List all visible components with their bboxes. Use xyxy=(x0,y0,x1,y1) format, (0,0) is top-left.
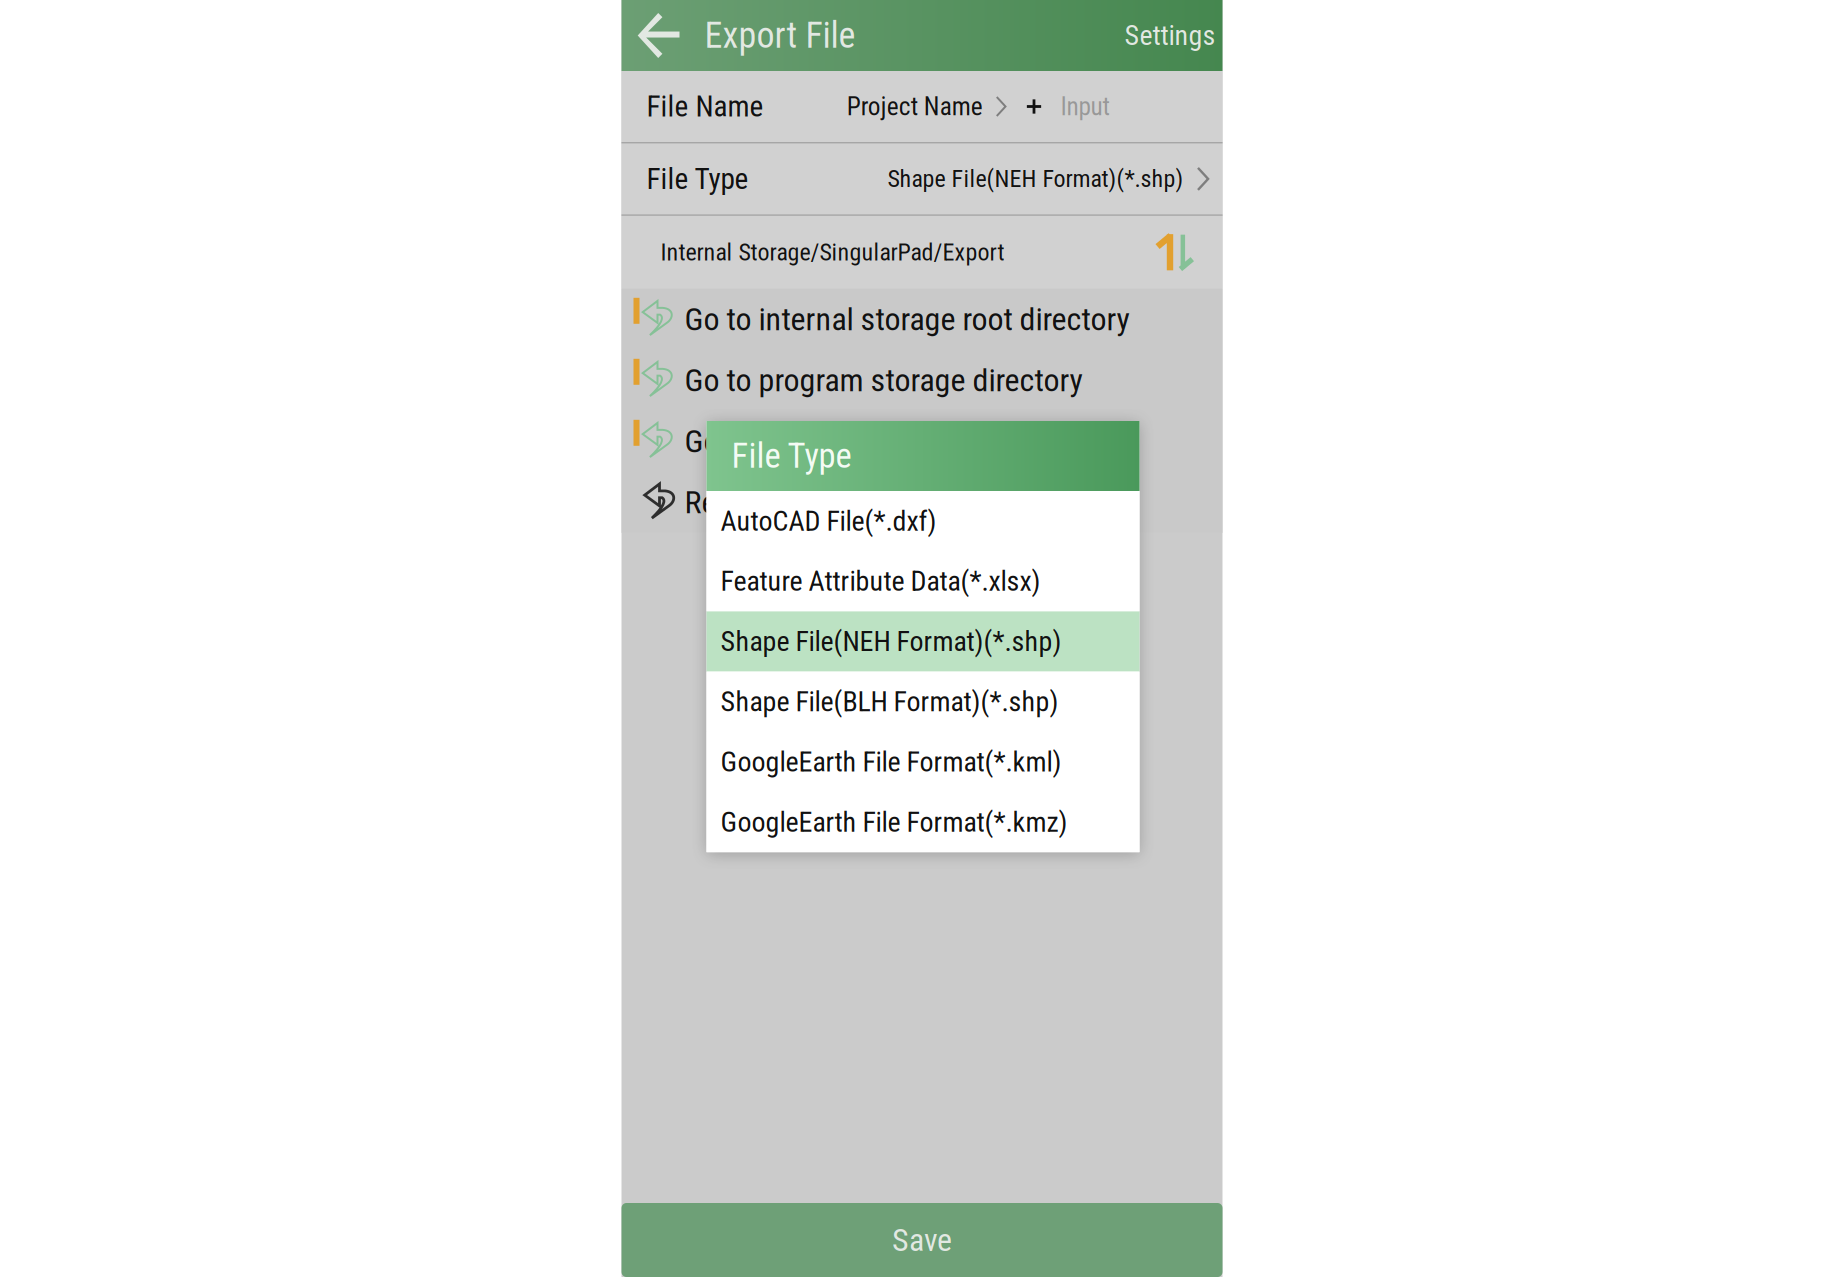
staticText: Export File xyxy=(704,14,855,57)
staticText: Save xyxy=(892,1221,952,1259)
button[interactable]: GoogleEarth File Format(*.kml) xyxy=(706,732,1139,792)
staticText: Feature Attribute Data(*.xlsx) xyxy=(720,565,1040,598)
button[interactable]: Return to the previous directory xyxy=(621,472,1222,533)
button[interactable]: Go to SD card storage directory xyxy=(621,411,1222,472)
button[interactable]: GoogleEarth File Format(*.kmz) xyxy=(706,792,1139,852)
button[interactable]: File Name xyxy=(621,71,1222,142)
staticText: Shape File(NEH Format)(*.shp) xyxy=(720,625,1061,658)
staticText: File Type xyxy=(646,162,748,196)
staticText: Shape File(BLH Format)(*.shp) xyxy=(720,685,1058,718)
staticText: Input xyxy=(1060,92,1109,121)
button[interactable]: File Type xyxy=(621,143,1222,214)
staticText: Shape File(NEH Format)(*.shp) xyxy=(888,165,1184,193)
button[interactable]: Shape File(BLH Format)(*.shp) xyxy=(706,672,1139,732)
staticText: Go to SD card storage directory xyxy=(684,423,1074,460)
staticText: File Name xyxy=(646,89,763,124)
staticText: Return to the previous directory xyxy=(684,484,1075,521)
button[interactable]: Settings xyxy=(1124,0,1222,71)
staticText: AutoCAD File(*.dxf) xyxy=(720,505,936,537)
staticText: Go to program storage directory xyxy=(684,362,1082,399)
staticText: Settings xyxy=(1124,19,1215,52)
button[interactable]: Back xyxy=(621,0,697,71)
staticText: Internal Storage/SingularPad/Export xyxy=(660,238,1004,266)
button[interactable]: Toggle sort order xyxy=(1156,232,1196,272)
staticText: Project Name xyxy=(847,92,983,121)
button[interactable]: Feature Attribute Data(*.xlsx) xyxy=(706,551,1139,611)
staticText: GoogleEarth File Format(*.kmz) xyxy=(720,806,1067,838)
staticText: GoogleEarth File Format(*.kml) xyxy=(720,745,1061,778)
staticText: File Type xyxy=(731,436,851,476)
button[interactable]: AutoCAD File(*.dxf) xyxy=(706,491,1139,551)
button[interactable]: Save xyxy=(621,1203,1222,1277)
button[interactable]: Go to program storage directory xyxy=(621,350,1222,411)
staticText: Go to internal storage root directory xyxy=(684,301,1129,338)
button[interactable]: Go to internal storage root directory xyxy=(621,289,1222,350)
button[interactable]: Shape File(NEH Format)(*.shp) xyxy=(706,611,1139,672)
